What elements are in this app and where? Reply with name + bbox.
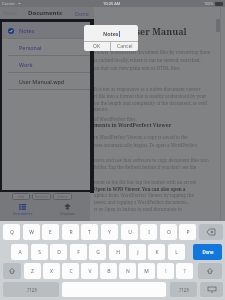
button[interactable]: Backspace bbox=[199, 224, 223, 240]
button[interactable]: ! bbox=[157, 263, 174, 279]
staticText: It is not as responsive as a native docu… bbox=[94, 86, 201, 92]
button[interactable]: Personal bbox=[2, 39, 90, 56]
button[interactable]: T bbox=[81, 224, 98, 240]
staticText: in WordPerfect Viewer, a copy is saved t… bbox=[94, 134, 188, 140]
button[interactable]: O bbox=[160, 224, 177, 240]
button[interactable]: K bbox=[148, 244, 165, 260]
button[interactable]: OK bbox=[84, 42, 110, 51]
staticText: Notes bbox=[19, 27, 35, 34]
button[interactable]: V bbox=[81, 263, 98, 279]
staticText: K bbox=[155, 249, 159, 256]
staticText: of WordPerfect files. bbox=[94, 116, 137, 122]
staticText: Open in WPD Viewer. You can also open a bbox=[94, 186, 186, 192]
staticText: 100% bbox=[204, 1, 214, 6]
button[interactable]: Dropbox bbox=[45, 201, 90, 221]
button[interactable]: B bbox=[100, 263, 117, 279]
button[interactable]: I bbox=[140, 224, 157, 240]
button[interactable]: Done bbox=[75, 10, 89, 17]
button[interactable]: H bbox=[109, 244, 126, 260]
staticText: rt file into a format that is readily un… bbox=[94, 93, 207, 99]
staticText: G bbox=[96, 249, 100, 256]
staticText: on the length and complexity of the docu… bbox=[94, 100, 208, 106]
button[interactable]: Z bbox=[24, 263, 41, 279]
staticText: iewer, and tapping a WordPerfect documen… bbox=[94, 199, 190, 205]
button[interactable]: X bbox=[43, 263, 60, 279]
button[interactable]: R bbox=[62, 224, 79, 240]
staticText: Documents bbox=[28, 9, 63, 17]
staticText: J bbox=[137, 249, 139, 256]
button[interactable]: Q bbox=[3, 224, 20, 240]
button[interactable]: Rename bbox=[32, 193, 51, 200]
button[interactable]: S bbox=[31, 244, 48, 260]
staticText: ! bbox=[165, 268, 167, 275]
staticText: Q bbox=[10, 229, 14, 236]
staticText: U bbox=[128, 229, 132, 236]
staticText: cess automatically begins. To open a Wor… bbox=[94, 142, 198, 148]
staticText: Notes bbox=[103, 30, 119, 37]
staticText: on that can view plain text or HTML file… bbox=[94, 65, 181, 71]
button[interactable]: G bbox=[89, 244, 106, 260]
staticText: V bbox=[88, 268, 92, 275]
staticText: Y bbox=[108, 229, 111, 236]
button[interactable]: Shift bbox=[3, 263, 21, 279]
staticText: Work bbox=[19, 61, 33, 68]
button[interactable]: P bbox=[179, 224, 196, 240]
button[interactable]: ? bbox=[176, 263, 193, 279]
staticText: C bbox=[69, 268, 73, 275]
staticText: device. bbox=[94, 106, 109, 112]
staticText: Viewer WordPerfect document files by con… bbox=[94, 49, 211, 55]
staticText: D bbox=[57, 249, 61, 256]
button[interactable]: Delete bbox=[53, 193, 72, 200]
staticText: A bbox=[18, 249, 22, 256]
button[interactable]: .?123 bbox=[170, 282, 197, 297]
button[interactable]: L bbox=[168, 244, 185, 260]
button[interactable]: D bbox=[50, 244, 67, 260]
button[interactable]: A bbox=[11, 244, 28, 260]
staticText: W bbox=[29, 229, 34, 236]
staticText: Rename bbox=[35, 194, 49, 199]
button[interactable]: J bbox=[129, 244, 146, 260]
button[interactable]: Done bbox=[193, 244, 222, 260]
staticText: Documents bbox=[13, 211, 33, 216]
staticText: L bbox=[175, 249, 178, 256]
staticText: Personal bbox=[19, 44, 42, 51]
button[interactable]: Work bbox=[2, 56, 90, 73]
staticText: Done bbox=[75, 10, 89, 17]
staticText: Edit bbox=[18, 194, 25, 199]
button[interactable]: Hide keyboard bbox=[200, 282, 223, 297]
staticText: B bbox=[107, 268, 111, 275]
button[interactable]: Cancel bbox=[111, 42, 138, 51]
button[interactable]: M bbox=[138, 263, 155, 279]
button[interactable]: Documents bbox=[0, 201, 45, 221]
staticText: Cancel bbox=[117, 43, 133, 50]
button[interactable]: F bbox=[70, 244, 87, 260]
staticText: Done bbox=[202, 249, 214, 255]
staticText: S bbox=[38, 249, 41, 256]
staticText: uters and use that software to copy docu… bbox=[94, 157, 209, 163]
button[interactable]: .?123 bbox=[3, 282, 59, 297]
staticText: folder. Tap the Refresh button if you do… bbox=[94, 164, 197, 170]
button[interactable]: Y bbox=[101, 224, 118, 240]
staticText: I bbox=[148, 229, 150, 236]
staticText: N bbox=[126, 268, 130, 275]
staticText: M bbox=[144, 268, 149, 275]
staticText: Carrier bbox=[2, 1, 16, 6]
button[interactable]: Edit bbox=[12, 193, 30, 200]
button[interactable]: C bbox=[62, 263, 79, 279]
staticText: OK bbox=[93, 43, 101, 50]
button[interactable]: U bbox=[121, 224, 138, 240]
staticText: H bbox=[116, 249, 120, 256]
button[interactable]: N bbox=[119, 263, 136, 279]
staticText: aphics from WordPerfect Viewer by tappin… bbox=[94, 192, 194, 198]
button[interactable]: Notes bbox=[2, 22, 90, 39]
button[interactable]: W bbox=[23, 224, 40, 240]
staticText: O bbox=[167, 229, 171, 236]
staticText: is cached locally, where it can be viewe… bbox=[94, 57, 201, 63]
button[interactable]: User Manual.wpd bbox=[2, 73, 90, 90]
staticText: Dropbox bbox=[60, 211, 75, 216]
button[interactable]: E bbox=[42, 224, 59, 240]
staticText: Delete bbox=[57, 194, 68, 199]
button[interactable]: Shift bbox=[198, 263, 222, 279]
